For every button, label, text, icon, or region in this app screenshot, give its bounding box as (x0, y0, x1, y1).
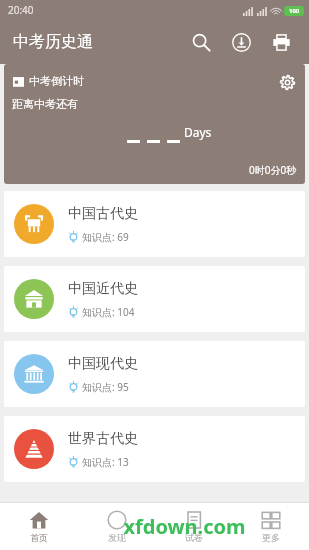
button[interactable]: 中国现代史 (4, 341, 305, 407)
staticText: xfdown.com (123, 513, 246, 540)
staticText: 中考倒计时 (29, 74, 84, 88)
staticText: 世界古代史 (68, 430, 138, 448)
staticText: 中考历史通 (13, 32, 93, 52)
button[interactable]: 世界古代史 (4, 416, 305, 482)
staticText: 首页 (30, 532, 48, 543)
button[interactable]: Download (221, 22, 261, 62)
button[interactable]: 中国近代史 (4, 266, 305, 332)
staticText: 知识点: 104 (82, 305, 135, 319)
staticText: 发现 (108, 532, 126, 543)
staticText: 知识点: 69 (82, 230, 129, 244)
button[interactable]: Settings (275, 70, 299, 94)
staticText: Days (184, 124, 212, 140)
button[interactable]: 中国古代史 (4, 191, 305, 257)
button[interactable]: 首页 (0, 502, 78, 550)
staticText: 中国现代史 (68, 355, 138, 373)
button[interactable]: 中考倒计时 (4, 64, 305, 184)
staticText: 中国古代史 (68, 205, 138, 223)
button[interactable]: Print (261, 22, 301, 62)
staticText: 知识点: 95 (82, 380, 129, 394)
staticText: 20:40 (8, 3, 34, 17)
staticText: 100 (289, 7, 300, 15)
staticText: 距离中考还有 (12, 97, 78, 111)
staticText: 0时0分0秒 (249, 163, 297, 177)
staticText: 中国近代史 (68, 280, 138, 298)
button[interactable]: Search (181, 22, 221, 62)
staticText: 试卷 (185, 532, 203, 543)
staticText: 更多 (262, 532, 280, 543)
button[interactable]: 发现 (78, 502, 155, 550)
button[interactable]: 更多 (232, 502, 309, 550)
button[interactable]: 试卷 (155, 502, 232, 550)
staticText: 知识点: 13 (82, 455, 129, 469)
